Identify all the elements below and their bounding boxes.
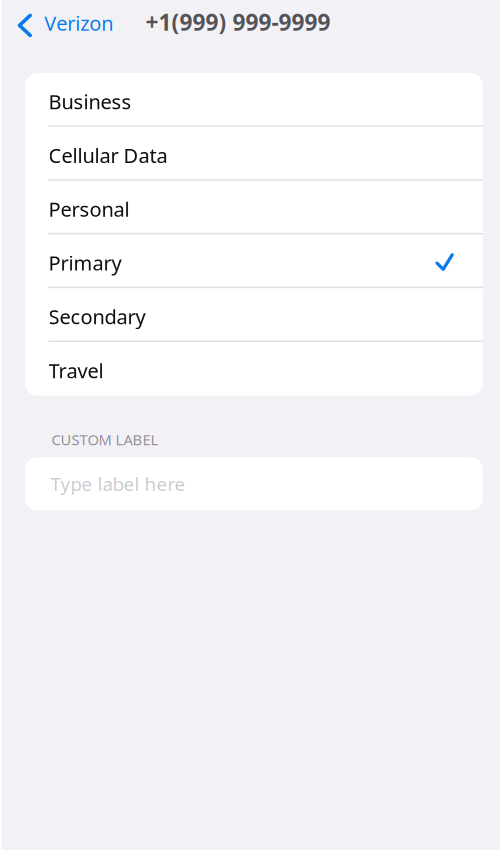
staticText: Business <box>48 88 131 115</box>
button[interactable]: Secondary <box>25 288 483 342</box>
staticText: Secondary <box>48 303 145 330</box>
button[interactable]: Business <box>25 73 483 127</box>
staticText: Cellular Data <box>48 142 167 168</box>
staticText: +1(999) 999-9999 <box>145 7 330 37</box>
staticText: CUSTOM LABEL <box>51 430 158 449</box>
staticText: Personal <box>48 196 129 222</box>
button[interactable]: Cellular Data <box>25 127 483 181</box>
button[interactable]: Type label here <box>25 457 483 510</box>
button[interactable]: Personal <box>25 181 483 234</box>
staticText: Type label here <box>50 471 185 496</box>
button[interactable]: Primary <box>25 234 483 288</box>
staticText: Primary <box>48 249 121 276</box>
staticText: Verizon <box>44 10 113 36</box>
staticText: Travel <box>48 357 103 384</box>
button[interactable]: Back to Verizon <box>1 0 123 46</box>
button[interactable]: Travel <box>25 342 483 396</box>
